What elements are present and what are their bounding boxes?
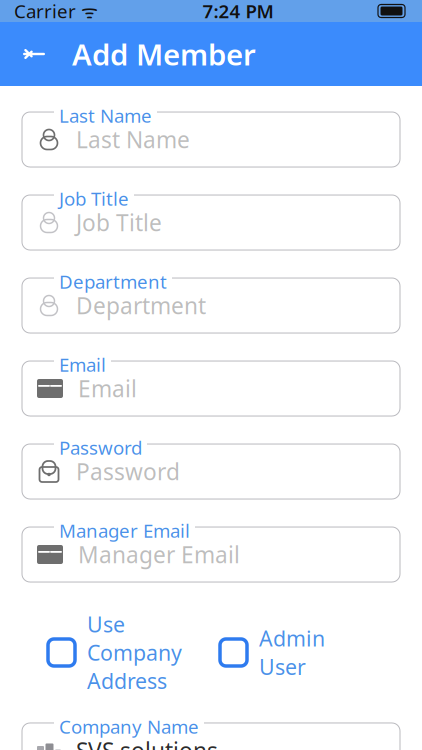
button[interactable]: Back [16,34,52,74]
staticText: Use Company Address [87,610,182,695]
staticText: Email [78,373,137,403]
staticText: Carrier [14,0,76,23]
staticText: Password [59,435,142,460]
staticText: Job Title [59,186,129,211]
staticText: Last Name [59,103,152,128]
button[interactable]: Admin User [220,624,374,681]
staticText: Password [76,456,180,486]
staticText: ᯤ [76,0,98,23]
staticText: Admin User [259,624,325,681]
button[interactable]: Use Company Address [48,610,220,695]
staticText: Company Name [59,714,199,739]
staticText: Job Title [76,207,162,237]
staticText: Manager Email [78,539,240,569]
staticText: Last Name [76,124,190,154]
staticText: Department [76,290,206,320]
staticText: Email [59,352,106,377]
staticText: 7:24 PM [202,0,273,23]
staticText: Department [59,269,167,294]
staticText: SVS solutions [76,735,218,750]
staticText: Manager Email [59,518,190,543]
staticText: Add Member [72,34,256,73]
